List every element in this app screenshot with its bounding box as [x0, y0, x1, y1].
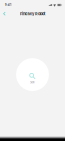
staticText: Scan [30, 80, 35, 84]
button[interactable]: Scan [16, 58, 49, 91]
staticText: 9:41 [5, 3, 12, 7]
staticText: Find My Robot [20, 11, 45, 16]
button[interactable]: Back [0, 10, 8, 17]
